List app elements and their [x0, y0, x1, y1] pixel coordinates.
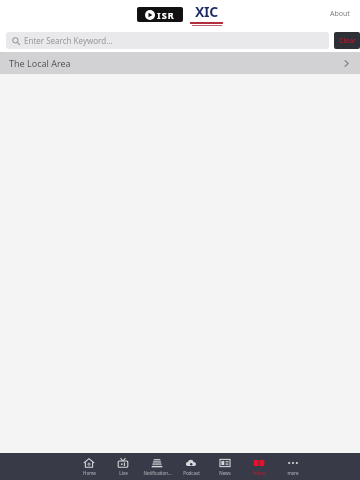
staticText: About [330, 9, 350, 19]
staticText: Live [119, 470, 128, 476]
button[interactable]: Live [106, 453, 140, 480]
button[interactable]: News [208, 453, 242, 480]
staticText: Home [83, 470, 96, 476]
button[interactable]: Clear [334, 32, 360, 49]
button[interactable]: The Local Area [0, 52, 360, 74]
button[interactable]: Home [72, 453, 106, 480]
button[interactable]: ISR [137, 7, 183, 22]
button[interactable]: Enter Search Keyword... [6, 32, 329, 49]
staticText: Notification... [143, 470, 172, 476]
button[interactable]: Videos [242, 453, 276, 480]
staticText: XIC [195, 2, 218, 21]
staticText: more [287, 470, 299, 476]
button[interactable]: XIC [190, 2, 223, 26]
button[interactable]: Podcast [174, 453, 208, 480]
staticText: The Local Area [9, 57, 71, 69]
staticText: Enter Search Keyword... [24, 35, 113, 46]
staticText: Videos [252, 470, 267, 476]
staticText: ISR [157, 9, 175, 21]
staticText: News [219, 470, 231, 476]
staticText: Clear [339, 36, 356, 46]
button[interactable]: more [276, 453, 310, 480]
button[interactable]: About [320, 4, 360, 24]
button[interactable]: Notification... [140, 453, 174, 480]
staticText: Podcast [183, 470, 200, 476]
